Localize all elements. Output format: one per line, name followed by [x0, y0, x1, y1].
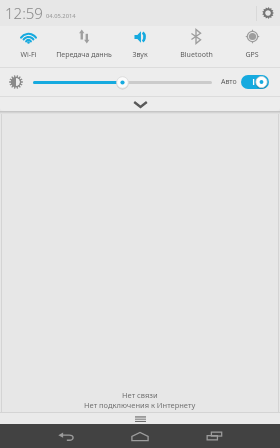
button[interactable]: Bluetooth	[168, 26, 224, 67]
button[interactable]: Передача данных	[56, 26, 112, 67]
button[interactable]: Home	[122, 424, 158, 448]
button[interactable]: Brightness	[115, 75, 130, 90]
button[interactable]: Back	[48, 424, 84, 448]
staticText: Авто	[221, 77, 237, 87]
button[interactable]: Wi-Fi	[0, 26, 56, 67]
button[interactable]: Settings	[258, 3, 278, 23]
staticText: Нет связи	[122, 390, 158, 400]
staticText: 12:59	[5, 3, 43, 23]
staticText: Bluetooth	[180, 50, 213, 60]
button[interactable]: Recents	[196, 424, 232, 448]
staticText: GPS	[245, 50, 259, 60]
staticText: Wi-Fi	[20, 50, 37, 60]
staticText: Передача данных	[56, 50, 112, 60]
button[interactable]: Collapse	[0, 97, 280, 111]
button[interactable]: GPS	[224, 26, 280, 67]
staticText: Нет подключения к Интернету	[84, 400, 196, 410]
button[interactable]: Звук	[112, 26, 168, 67]
button[interactable]: Notification handle	[0, 413, 280, 424]
staticText: Звук	[132, 50, 148, 60]
staticText: 04.05.2014	[46, 12, 76, 20]
button[interactable]: Auto brightness	[241, 75, 269, 89]
